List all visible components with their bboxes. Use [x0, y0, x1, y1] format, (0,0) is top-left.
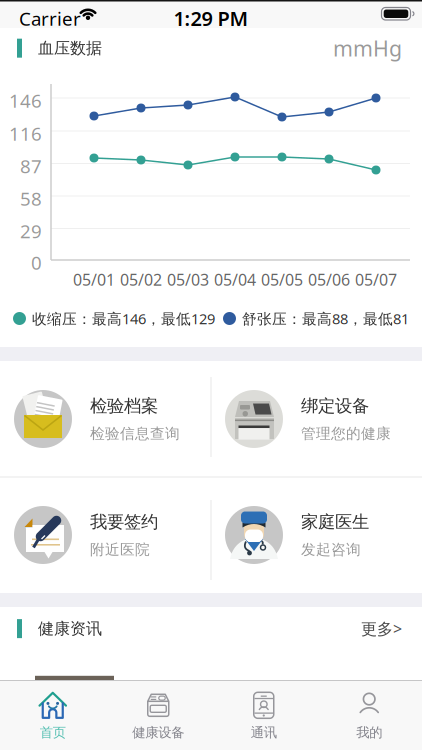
staticText: 05/02	[120, 269, 162, 290]
staticText: 116	[9, 121, 42, 146]
staticText: 绑定设备	[301, 395, 369, 417]
staticText: 发起咨询	[301, 541, 361, 559]
button[interactable]: 检验档案	[0, 361, 211, 477]
staticText: 检验信息查询	[90, 425, 180, 443]
button[interactable]: 我要签约	[0, 477, 211, 593]
staticText: 收缩压：最高146，最低129	[32, 309, 215, 328]
button[interactable]: 绑定设备	[211, 361, 422, 477]
staticText: 05/04	[214, 269, 256, 290]
staticText: 146	[9, 88, 42, 113]
staticText: 05/06	[308, 269, 350, 290]
staticText: 管理您的健康	[301, 425, 391, 443]
button[interactable]: 健康设备	[105, 685, 211, 747]
staticText: 舒张压：最高88，最低81	[242, 309, 409, 328]
button[interactable]: 更多>	[361, 618, 402, 639]
staticText: 05/05	[261, 269, 303, 290]
staticText: mmHg	[333, 34, 402, 62]
staticText: 1:29 PM	[173, 5, 248, 32]
staticText: 58	[20, 186, 42, 211]
staticText: 健康资讯	[38, 619, 102, 638]
staticText: 血压数据	[38, 38, 102, 58]
staticText: 05/07	[355, 269, 397, 290]
staticText: 通讯	[251, 724, 277, 741]
staticText: 检验档案	[90, 395, 158, 417]
button[interactable]: 家庭医生	[211, 477, 422, 593]
staticText: 附近医院	[90, 541, 150, 559]
staticText: 0	[31, 250, 42, 275]
staticText: 健康设备	[132, 724, 184, 741]
staticText: 更多>	[361, 618, 402, 639]
button[interactable]: 我的	[316, 685, 422, 747]
staticText: 我的	[356, 724, 382, 741]
staticText: 05/01	[73, 269, 115, 290]
staticText: 首页	[40, 724, 66, 741]
staticText: 05/03	[167, 269, 209, 290]
staticText: 87	[20, 153, 42, 178]
staticText: Carrier	[19, 6, 81, 31]
button[interactable]: 首页	[0, 685, 105, 747]
button[interactable]: 通讯	[211, 685, 316, 747]
staticText: 家庭医生	[301, 511, 369, 533]
staticText: 29	[20, 218, 42, 243]
staticText: 我要签约	[90, 511, 158, 533]
